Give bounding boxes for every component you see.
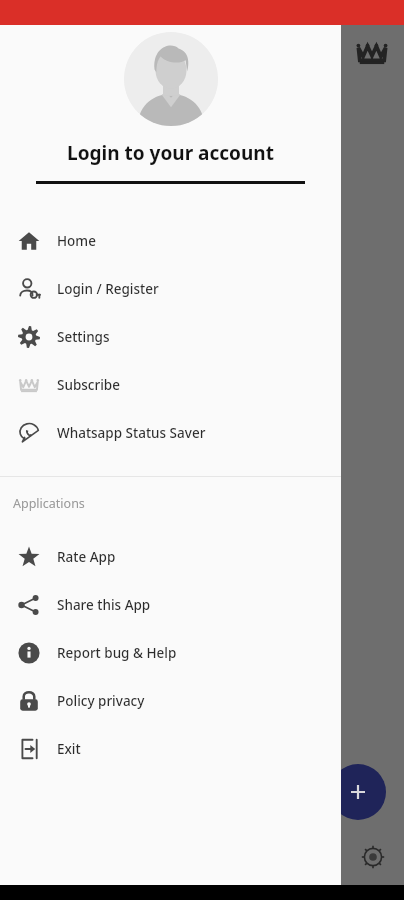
button[interactable]: Exit [0,725,341,773]
button[interactable]: Whatsapp Status Saver [0,409,341,457]
staticText: Policy privacy [57,692,145,710]
button[interactable] [124,32,218,126]
staticText: Settings [57,328,110,346]
staticText: Subscribe [57,376,120,394]
staticText: Rate App [57,548,116,566]
staticText: Exit [57,740,81,758]
button[interactable]: Subscribe [355,36,389,70]
button[interactable]: Rate App [0,533,341,581]
staticText: Share this App [57,596,151,614]
staticText: Home [57,232,96,250]
button[interactable]: Add [330,764,386,820]
button[interactable]: Home [0,217,341,265]
button[interactable]: Settings [0,313,341,361]
staticText: Whatsapp Status Saver [57,424,206,442]
staticText: Applications [13,495,85,512]
staticText: Login / Register [57,280,159,298]
button[interactable]: Share this App [0,581,341,629]
button[interactable]: Report bug & Help [0,629,341,677]
staticText: Report bug & Help [57,644,177,662]
button[interactable]: Settings [363,847,383,867]
button[interactable]: Login to your account [0,140,341,166]
button[interactable]: Subscribe [0,361,341,409]
button[interactable]: Policy privacy [0,677,341,725]
button[interactable]: Login / Register [0,265,341,313]
